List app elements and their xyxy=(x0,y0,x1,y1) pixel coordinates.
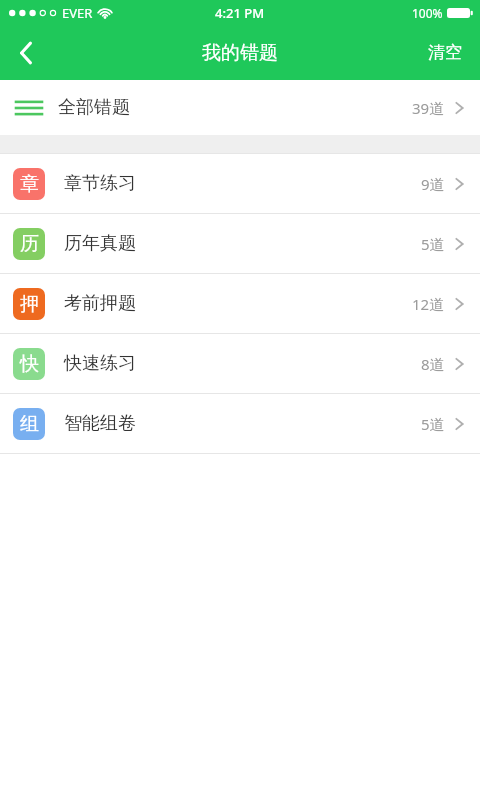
staticText: 我的错题 xyxy=(202,41,278,65)
staticText: 考前押题 xyxy=(64,292,136,315)
staticText: 快 xyxy=(20,352,39,376)
staticText: 章节练习 xyxy=(64,172,136,195)
staticText: 押 xyxy=(20,292,39,316)
button[interactable]: 组 xyxy=(0,394,480,453)
staticText: 5道 xyxy=(421,414,445,434)
staticText: 12道 xyxy=(412,294,445,314)
staticText: 39道 xyxy=(412,98,445,118)
staticText: 历 xyxy=(20,232,39,256)
button[interactable]: 历 xyxy=(0,214,480,273)
button[interactable]: Back xyxy=(0,25,52,80)
button[interactable]: 全部错题 xyxy=(0,80,480,135)
staticText: 全部错题 xyxy=(58,96,130,119)
staticText: 章 xyxy=(20,172,39,196)
button[interactable]: 清空 xyxy=(410,25,480,80)
staticText: 快速练习 xyxy=(64,352,136,375)
staticText: 历年真题 xyxy=(64,232,136,255)
button[interactable]: 章 xyxy=(0,154,480,213)
staticText: 清空 xyxy=(428,42,462,63)
button[interactable]: 快 xyxy=(0,334,480,393)
staticText: 智能组卷 xyxy=(64,412,136,435)
staticText: 8道 xyxy=(421,354,445,374)
button[interactable]: 押 xyxy=(0,274,480,333)
staticText: 5道 xyxy=(421,234,445,254)
staticText: 4:21 PM xyxy=(215,4,265,22)
staticText: 9道 xyxy=(421,174,445,194)
staticText: EVER xyxy=(62,4,93,22)
staticText: 组 xyxy=(20,412,39,436)
staticText: 100% xyxy=(412,5,443,21)
